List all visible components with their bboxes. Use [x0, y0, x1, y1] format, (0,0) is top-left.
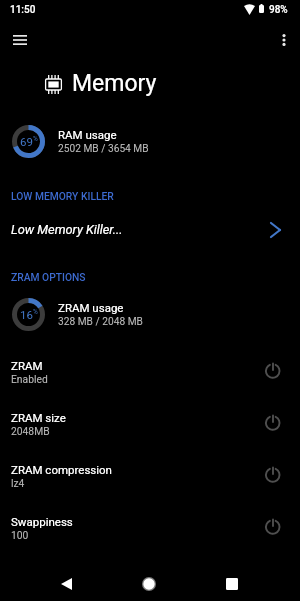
staticText: LOW MEMORY KILLER: [11, 190, 114, 202]
staticText: ZRAM: [11, 359, 43, 372]
button[interactable]: Back: [48, 566, 84, 601]
staticText: Enabled: [11, 373, 48, 385]
staticText: ZRAM OPTIONS: [11, 271, 86, 283]
staticText: 11:50: [10, 4, 36, 16]
button[interactable]: Open navigation drawer: [4, 24, 35, 55]
staticText: 2502 MB / 3654 MB: [58, 143, 149, 155]
staticText: 69: [20, 135, 33, 148]
staticText: Swappiness: [11, 515, 73, 528]
staticText: 16: [20, 308, 33, 321]
staticText: %: [33, 308, 38, 316]
button[interactable]: Swappiness: [0, 503, 300, 551]
button[interactable]: 16: [0, 291, 300, 337]
staticText: RAM usage: [58, 128, 117, 141]
staticText: lz4: [11, 477, 25, 489]
button[interactable]: ZRAM compression: [0, 451, 300, 499]
staticText: ZRAM compression: [11, 463, 112, 476]
staticText: ZRAM usage: [58, 301, 124, 314]
staticText: 328 MB / 2048 MB: [58, 316, 143, 328]
staticText: ZRAM size: [11, 411, 66, 424]
staticText: 98%: [269, 4, 288, 16]
button[interactable]: 69: [0, 118, 300, 164]
button[interactable]: Home: [131, 566, 167, 601]
button[interactable]: More options: [269, 25, 299, 55]
button[interactable]: ZRAM size: [0, 399, 300, 447]
staticText: 2048MB: [11, 425, 50, 437]
staticText: Low Memory Killer...: [11, 222, 123, 237]
button[interactable]: Recent apps: [214, 566, 250, 601]
staticText: 100: [11, 529, 29, 541]
staticText: Memory: [72, 70, 157, 97]
button[interactable]: ZRAM: [0, 347, 300, 395]
button[interactable]: Low Memory Killer...: [0, 212, 300, 247]
staticText: %: [33, 135, 38, 143]
